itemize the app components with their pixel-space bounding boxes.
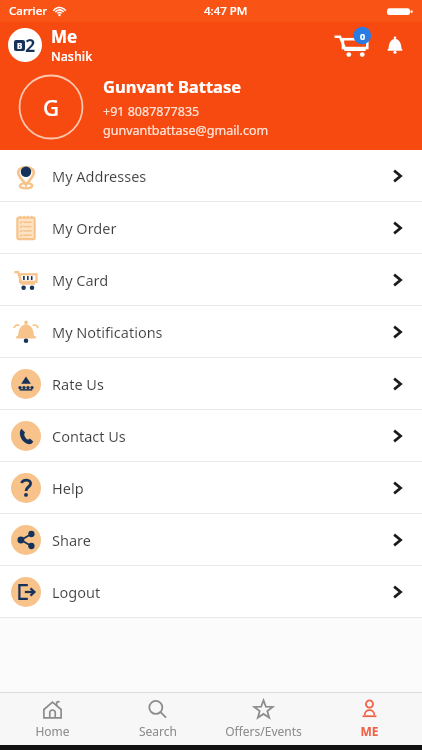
button[interactable]: Offers/Events	[210, 693, 316, 745]
staticText: Share	[52, 530, 91, 550]
staticText: My Card	[52, 270, 109, 290]
staticText: Search	[139, 723, 177, 739]
staticText: Help	[52, 478, 84, 498]
staticText: gunvantbattase@gmail.com	[103, 122, 269, 139]
staticText: +91 8087877835	[103, 103, 200, 120]
button[interactable]: My Card	[0, 254, 422, 305]
button[interactable]: Help	[0, 462, 422, 513]
staticText: Me	[51, 25, 78, 48]
button[interactable]: ME	[316, 693, 422, 745]
staticText: My Notifications	[52, 322, 163, 342]
staticText: 0	[360, 30, 366, 42]
button[interactable]: Home	[0, 693, 105, 745]
button[interactable]: Cart	[332, 28, 374, 62]
button[interactable]: Logout	[0, 566, 422, 617]
button[interactable]: My Order	[0, 202, 422, 253]
staticText: Carrier	[9, 3, 48, 19]
staticText: 4:47 PM	[204, 3, 248, 19]
staticText: Logout	[52, 582, 101, 602]
staticText: My Addresses	[52, 166, 147, 186]
button[interactable]: Rate Us	[0, 358, 422, 409]
staticText: Home	[35, 723, 70, 739]
button[interactable]: Share	[0, 514, 422, 565]
staticText: Contact Us	[52, 426, 126, 446]
staticText: Gunvant Battase	[103, 75, 242, 97]
staticText: B	[17, 40, 23, 51]
staticText: G	[43, 92, 59, 122]
button[interactable]: Notifications	[380, 30, 410, 60]
other: B2 logo	[8, 28, 42, 62]
staticText: My Order	[52, 218, 117, 238]
staticText: Offers/Events	[225, 723, 302, 739]
button[interactable]: Search	[105, 693, 210, 745]
staticText: Rate Us	[52, 374, 104, 394]
staticText: 2	[25, 33, 36, 58]
staticText: ME	[360, 723, 379, 739]
button[interactable]: Contact Us	[0, 410, 422, 461]
staticText: Nashik	[51, 48, 93, 65]
button[interactable]: My Notifications	[0, 306, 422, 357]
button[interactable]: My Addresses	[0, 150, 422, 201]
